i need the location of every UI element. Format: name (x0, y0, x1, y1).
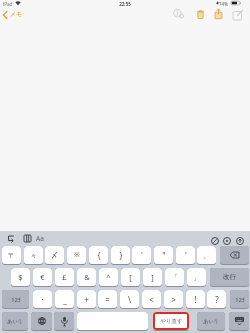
button[interactable]: 々 (24, 246, 43, 265)
staticText: やり直す (160, 318, 183, 325)
staticText: メモ (10, 10, 23, 18)
staticText: € (40, 272, 45, 282)
button[interactable]: · (33, 290, 52, 309)
staticText: 々 (30, 251, 37, 260)
staticText: ^ (106, 272, 111, 282)
button[interactable] (21, 233, 33, 244)
staticText: _ (63, 294, 67, 305)
button[interactable]: + (77, 290, 96, 309)
staticText: \ (128, 294, 131, 305)
staticText: 「 (171, 273, 178, 282)
button[interactable] (77, 312, 148, 331)
staticText: = (105, 294, 110, 305)
button[interactable]: Aa (33, 232, 46, 244)
button[interactable]: _ (55, 290, 74, 309)
button[interactable]: { (89, 246, 108, 265)
button[interactable]: ! (186, 290, 205, 309)
staticText: Aa (36, 234, 44, 243)
staticText: 改行 (223, 273, 236, 281)
staticText: 、 (203, 250, 211, 260)
button[interactable]: } (111, 246, 130, 265)
button[interactable] (4, 233, 18, 244)
button[interactable] (234, 235, 245, 246)
button[interactable]: やり直す (153, 312, 189, 331)
button[interactable] (170, 8, 186, 21)
button[interactable]: £ (55, 268, 74, 287)
button[interactable]: ] (143, 268, 162, 287)
button[interactable] (194, 8, 207, 21)
staticText: £ (62, 272, 67, 282)
button[interactable]: ? (207, 290, 226, 309)
staticText: iPad (3, 1, 13, 7)
button[interactable] (54, 312, 74, 331)
staticText: 74% (219, 1, 228, 7)
button[interactable]: あいう (2, 312, 28, 331)
button[interactable]: ※ (67, 246, 86, 265)
staticText: ' (185, 250, 187, 261)
button[interactable]: < (142, 290, 161, 309)
button[interactable] (221, 235, 232, 246)
staticText: ] (151, 272, 154, 282)
button[interactable]: 123 (230, 290, 249, 309)
staticText: 〆 (51, 251, 58, 260)
button[interactable]: 〆 (45, 246, 64, 265)
button[interactable]: 」 (187, 268, 206, 287)
button[interactable]: $ (11, 268, 30, 287)
button[interactable] (209, 235, 220, 246)
staticText: ※ (74, 250, 80, 260)
staticText: あいう (203, 318, 219, 324)
staticText: " (162, 250, 166, 261)
button[interactable]: > (164, 290, 183, 309)
button[interactable]: ^ (99, 268, 118, 287)
button[interactable]: 改行 (210, 268, 249, 287)
staticText: あいう (7, 318, 23, 324)
button[interactable]: = (98, 290, 117, 309)
button[interactable]: 、 (197, 246, 216, 265)
button[interactable] (229, 312, 249, 331)
button[interactable]: 123 (2, 290, 29, 309)
button[interactable]: 「 (165, 268, 184, 287)
staticText: [ (129, 272, 132, 282)
staticText: 123 (11, 296, 21, 303)
staticText: ? (215, 294, 219, 305)
staticText: } (119, 250, 123, 261)
button[interactable] (212, 7, 225, 21)
staticText: · (41, 294, 44, 305)
staticText: > (171, 294, 176, 305)
button[interactable]: ' (132, 246, 151, 265)
staticText: + (84, 294, 89, 305)
button[interactable]: \ (120, 290, 139, 309)
staticText: 」 (193, 273, 200, 282)
button[interactable]: [ (121, 268, 140, 287)
button[interactable]: & (77, 268, 96, 287)
button[interactable] (231, 8, 245, 21)
button[interactable]: 〒 (2, 246, 21, 265)
staticText: 〒 (8, 251, 15, 260)
staticText: 22:55 (0, 1, 250, 7)
button[interactable]: あいう (197, 312, 225, 331)
staticText: < (149, 294, 154, 305)
staticText: $ (18, 272, 23, 282)
button[interactable]: " (154, 246, 173, 265)
staticText: { (97, 250, 101, 261)
button[interactable]: ' (176, 246, 195, 265)
staticText: ! (194, 294, 197, 305)
staticText: & (84, 272, 90, 282)
button[interactable]: メモ (1, 8, 33, 22)
button[interactable] (31, 312, 52, 331)
button[interactable]: € (33, 268, 52, 287)
staticText: 123 (235, 296, 245, 303)
button[interactable] (220, 246, 249, 265)
staticText: ' (141, 250, 143, 261)
